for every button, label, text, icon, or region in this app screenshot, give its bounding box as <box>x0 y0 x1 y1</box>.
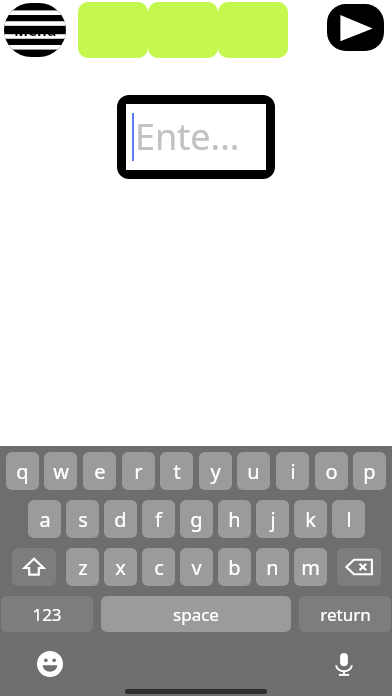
button[interactable]: k <box>294 500 327 538</box>
button[interactable]: Menu <box>4 3 66 57</box>
staticText: Menu <box>14 20 57 40</box>
staticText: l <box>346 506 352 533</box>
staticText: k <box>305 506 316 533</box>
staticText: q <box>16 458 29 485</box>
staticText: a <box>39 506 51 533</box>
staticText: x <box>115 554 126 581</box>
button[interactable]: 123 <box>1 596 93 632</box>
staticText: p <box>363 458 376 485</box>
staticText: m <box>301 554 320 581</box>
staticText: n <box>266 554 279 581</box>
button[interactable]: Shift <box>12 548 56 586</box>
button[interactable]: u <box>237 452 270 490</box>
button[interactable] <box>218 2 288 58</box>
staticText: Ente... <box>135 112 240 161</box>
button[interactable]: l <box>332 500 365 538</box>
staticText: s <box>78 506 88 533</box>
staticText: f <box>155 506 162 533</box>
button[interactable]: e <box>83 452 116 490</box>
button[interactable]: q <box>6 452 39 490</box>
button[interactable]: s <box>66 500 99 538</box>
button[interactable]: h <box>218 500 251 538</box>
staticText: i <box>290 458 296 485</box>
staticText: 123 <box>32 603 62 626</box>
button[interactable]: p <box>353 452 386 490</box>
staticText: space <box>173 603 219 626</box>
button[interactable]: o <box>315 452 348 490</box>
button[interactable]: return <box>299 596 391 632</box>
staticText: z <box>78 554 88 581</box>
button[interactable]: f <box>142 500 175 538</box>
button[interactable]: w <box>44 452 77 490</box>
button[interactable]: j <box>256 500 289 538</box>
button[interactable]: v <box>180 548 213 586</box>
button[interactable]: d <box>104 500 137 538</box>
button[interactable]: n <box>256 548 289 586</box>
staticText: r <box>134 458 143 485</box>
staticText: g <box>190 506 203 533</box>
staticText: v <box>191 554 202 581</box>
button[interactable]: Ente... <box>117 95 275 179</box>
staticText: d <box>114 506 127 533</box>
button[interactable]: i <box>276 452 309 490</box>
staticText: c <box>154 554 164 581</box>
button[interactable]: m <box>294 548 327 586</box>
button[interactable]: Voice input <box>328 648 360 680</box>
button[interactable]: c <box>142 548 175 586</box>
staticText: o <box>325 458 338 485</box>
staticText: b <box>228 554 241 581</box>
button[interactable]: x <box>104 548 137 586</box>
staticText: w <box>53 458 69 485</box>
button[interactable]: y <box>199 452 232 490</box>
button[interactable] <box>78 2 148 58</box>
button[interactable]: b <box>218 548 251 586</box>
button[interactable]: a <box>28 500 61 538</box>
button[interactable]: space <box>101 596 291 632</box>
button[interactable]: Play <box>327 4 384 51</box>
staticText: y <box>210 458 221 485</box>
button[interactable] <box>148 2 218 58</box>
button[interactable]: Emoji <box>34 648 66 680</box>
staticText: t <box>173 458 181 485</box>
button[interactable]: Backspace <box>337 548 381 586</box>
staticText: e <box>94 458 106 485</box>
button[interactable]: z <box>66 548 99 586</box>
button[interactable]: t <box>160 452 193 490</box>
staticText: return <box>320 603 371 626</box>
staticText: h <box>228 506 241 533</box>
staticText: j <box>270 506 276 533</box>
button[interactable]: r <box>122 452 155 490</box>
button[interactable]: g <box>180 500 213 538</box>
staticText: u <box>247 458 260 485</box>
